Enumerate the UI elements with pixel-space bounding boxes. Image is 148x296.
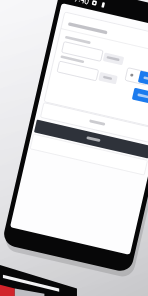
button[interactable]: Clear: [30, 119, 130, 133]
button[interactable]: Convert: [86, 66, 110, 78]
